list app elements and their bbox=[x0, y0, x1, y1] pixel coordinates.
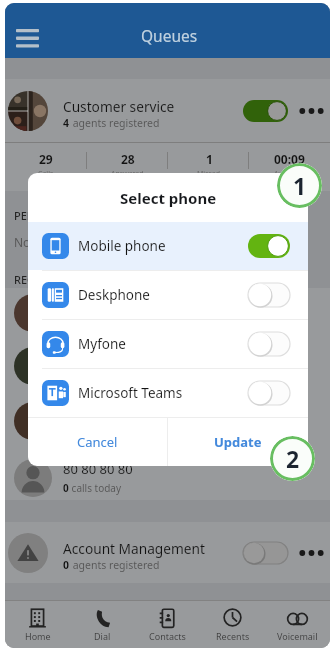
button[interactable]: Turn on bbox=[243, 542, 288, 564]
staticText: 4 bbox=[63, 116, 70, 130]
staticText: Cancel bbox=[77, 433, 118, 451]
staticText: agents registered bbox=[70, 116, 160, 130]
button[interactable]: Home bbox=[5, 601, 70, 648]
staticText: Recents bbox=[216, 630, 250, 642]
button[interactable]: Recent contact bbox=[14, 402, 52, 440]
staticText: Myfone bbox=[78, 335, 248, 353]
staticText: agents registered bbox=[70, 558, 160, 572]
button[interactable]: More options bbox=[297, 99, 326, 123]
staticText: Select phone bbox=[120, 188, 217, 208]
button[interactable]: Customer service bbox=[5, 79, 330, 142]
staticText: Update bbox=[214, 433, 262, 451]
button[interactable]: Microsoft Teams bbox=[28, 369, 308, 417]
staticText: Account Management bbox=[63, 539, 205, 558]
button[interactable]: Mobile phone bbox=[28, 222, 308, 270]
button[interactable]: Recent contact bbox=[14, 294, 52, 332]
staticText: RECENT bbox=[14, 272, 55, 287]
staticText: Microsoft Teams bbox=[78, 384, 248, 402]
button[interactable]: More options bbox=[297, 541, 326, 565]
button[interactable]: Deskphone bbox=[28, 271, 308, 319]
staticText: Dial bbox=[94, 630, 111, 642]
staticText: 80 80 80 80 bbox=[63, 460, 133, 478]
staticText: Calls bbox=[38, 169, 54, 179]
button[interactable]: Recents bbox=[200, 601, 265, 648]
staticText: 0 bbox=[63, 481, 69, 495]
button[interactable]: Cancel bbox=[28, 418, 167, 466]
button[interactable]: Turn off bbox=[243, 100, 288, 122]
staticText: 1 bbox=[293, 170, 307, 201]
staticText: Queues bbox=[141, 25, 198, 46]
button[interactable]: Recent contact bbox=[14, 347, 52, 385]
staticText: 0 bbox=[63, 558, 70, 572]
staticText: Customer service bbox=[63, 97, 175, 116]
button[interactable]: Turn on bbox=[248, 381, 290, 405]
staticText: Contacts bbox=[149, 630, 186, 642]
staticText: 1 bbox=[206, 151, 213, 167]
staticText: 2 bbox=[286, 443, 300, 474]
staticText: PERSONAL bbox=[14, 208, 71, 223]
button[interactable]: Turn on bbox=[248, 332, 290, 356]
staticText: Avg. time bbox=[274, 169, 305, 179]
staticText: Deskphone bbox=[78, 286, 248, 304]
staticText: Missed bbox=[197, 169, 221, 179]
staticText: No personal queues bbox=[14, 234, 128, 250]
staticText: Mobile phone bbox=[78, 237, 248, 255]
button[interactable]: Turn on bbox=[248, 283, 290, 307]
button[interactable]: Account Management bbox=[5, 522, 330, 583]
button[interactable]: Dial bbox=[70, 601, 135, 648]
button[interactable]: Open navigation menu bbox=[10, 23, 44, 53]
button[interactable]: Update bbox=[168, 418, 308, 466]
button[interactable]: Voicemail bbox=[265, 601, 330, 648]
staticText: calls today bbox=[69, 481, 122, 495]
button[interactable]: Turn off bbox=[248, 234, 290, 258]
staticText: Home bbox=[25, 630, 51, 642]
button[interactable]: 80 80 80 80 bbox=[5, 455, 330, 500]
button[interactable]: Myfone bbox=[28, 320, 308, 368]
staticText: Voicemail bbox=[277, 630, 318, 642]
staticText: 29 bbox=[39, 151, 53, 167]
staticText: 28 bbox=[121, 151, 135, 167]
staticText: 00:09 bbox=[274, 151, 305, 167]
button[interactable]: Contacts bbox=[135, 601, 200, 648]
staticText: Answered bbox=[111, 169, 144, 179]
